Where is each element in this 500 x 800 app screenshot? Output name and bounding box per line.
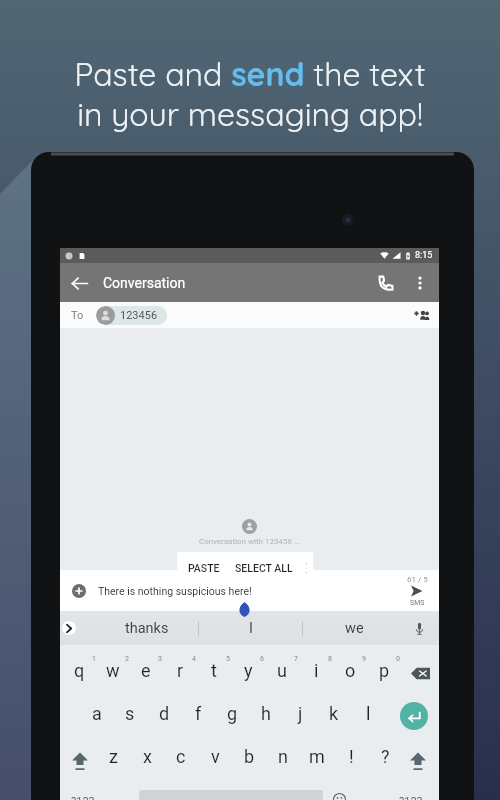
button[interactable]: Send SMS [395, 570, 439, 611]
staticText: There is nothing suspicious here! [98, 585, 252, 597]
button[interactable]: Back [60, 264, 98, 302]
staticText: s [125, 703, 135, 724]
staticText: Conversation [103, 275, 186, 291]
button[interactable]: l [351, 695, 385, 737]
button[interactable]: PASTE [177, 552, 229, 583]
button[interactable]: Add people [408, 302, 434, 328]
staticText: e [141, 660, 151, 681]
button[interactable]: ?123 [60, 775, 106, 800]
staticText: PASTE [188, 562, 220, 574]
staticText: 3 [158, 655, 162, 663]
staticText: g [227, 703, 238, 724]
button[interactable]: s [113, 695, 147, 737]
button[interactable]: we [303, 611, 406, 645]
button[interactable]: 123456 [96, 306, 167, 325]
staticText: 2 [125, 655, 129, 663]
staticText: 7 [294, 655, 298, 663]
button[interactable]: z [96, 737, 130, 775]
staticText: o [345, 660, 356, 681]
staticText: in your messaging app! [77, 94, 423, 134]
button[interactable]: More options [299, 552, 313, 583]
staticText: 8:15 [415, 250, 433, 261]
button[interactable]: Enter [385, 695, 439, 737]
button[interactable]: ?123 [383, 775, 439, 800]
staticText: b [244, 746, 255, 767]
staticText: c [176, 746, 186, 767]
staticText: I [249, 620, 253, 637]
button[interactable]: c [164, 737, 198, 775]
staticText: 5 [226, 655, 230, 663]
staticText: m [309, 746, 325, 767]
staticText: x [143, 746, 152, 767]
staticText: ?123 [399, 795, 423, 800]
staticText: i [314, 660, 319, 681]
staticText: 4 [192, 655, 196, 663]
button[interactable]: 3 [129, 645, 163, 695]
button[interactable]: 9 [333, 645, 367, 695]
button[interactable]: v [198, 737, 232, 775]
button[interactable]: I [199, 611, 302, 645]
button[interactable]: More options [405, 268, 435, 298]
staticText: f [195, 703, 202, 724]
button[interactable]: ! [334, 737, 368, 775]
staticText: SELECT ALL [235, 562, 293, 574]
button[interactable]: m [300, 737, 334, 775]
button[interactable]: f [181, 695, 215, 737]
button[interactable]: 4 [163, 645, 197, 695]
button[interactable]: Attach [72, 584, 86, 598]
button[interactable]: Voice input [406, 611, 439, 645]
staticText: Paste and send the text [74, 54, 426, 94]
staticText: 6 [260, 655, 264, 663]
button[interactable]: n [266, 737, 300, 775]
button[interactable]: Backspace [401, 645, 439, 695]
staticText: u [277, 660, 287, 681]
button[interactable]: k [317, 695, 351, 737]
staticText: 123456 [120, 309, 158, 322]
staticText: 61 / 5 [407, 575, 428, 584]
button[interactable]: b [232, 737, 266, 775]
staticText: Conversation with 123456 ... [199, 537, 301, 546]
button[interactable]: 6 [231, 645, 265, 695]
button[interactable]: Emoji [323, 775, 355, 800]
staticText: l [366, 703, 371, 724]
button[interactable]: 5 [197, 645, 231, 695]
button[interactable]: x [130, 737, 164, 775]
staticText: k [329, 703, 339, 724]
button[interactable]: Shift [402, 737, 439, 775]
staticText: v [211, 746, 220, 767]
staticText: thanks [125, 620, 169, 637]
button[interactable]: Shift [60, 737, 96, 775]
button[interactable]: SELECT ALL [229, 552, 299, 583]
button[interactable]: ? [368, 737, 402, 775]
button[interactable]: h [249, 695, 283, 737]
button[interactable]: 0 [367, 645, 401, 695]
staticText: d [159, 703, 170, 724]
button[interactable]: g [215, 695, 249, 737]
staticText: SMS [410, 599, 425, 607]
staticText: n [278, 746, 288, 767]
button[interactable]: j [283, 695, 317, 737]
button[interactable]: 2 [96, 645, 129, 695]
staticText: ? [381, 746, 390, 767]
staticText: 0 [396, 655, 400, 663]
button[interactable]: Expand suggestions [60, 611, 95, 645]
staticText: t [211, 660, 217, 681]
staticText: 8 [328, 655, 332, 663]
button[interactable]: a [80, 695, 113, 737]
staticText: y [244, 660, 253, 681]
button[interactable]: d [147, 695, 181, 737]
button[interactable]: Call [367, 264, 405, 302]
staticText: a [92, 703, 102, 724]
staticText: 9 [362, 655, 366, 663]
button[interactable]: 8 [299, 645, 333, 695]
button[interactable]: 7 [265, 645, 299, 695]
button[interactable]: thanks [95, 611, 198, 645]
button[interactable]: 1 [63, 645, 96, 695]
staticText: 1 [92, 655, 96, 663]
staticText: j [298, 703, 303, 724]
